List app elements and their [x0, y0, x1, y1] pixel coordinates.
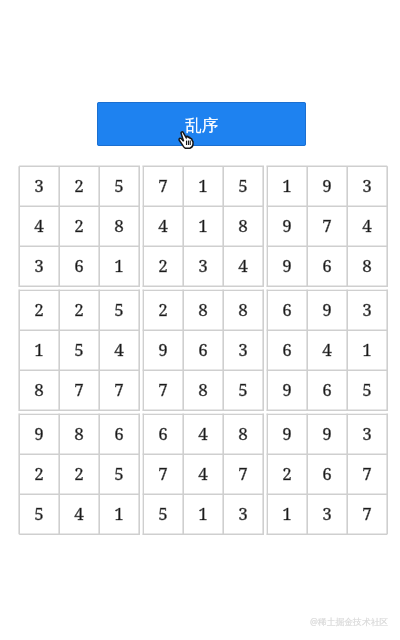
staticText: 1: [282, 502, 292, 525]
staticText: 7: [158, 462, 168, 485]
staticText: 8: [198, 298, 208, 321]
button[interactable]: 2: [143, 290, 263, 410]
staticText: 2: [74, 174, 84, 197]
staticText: 2: [34, 462, 44, 485]
staticText: 1: [114, 254, 124, 277]
staticText: 8: [362, 254, 372, 277]
staticText: 2: [282, 462, 292, 485]
staticText: 8: [198, 298, 208, 321]
staticText: 8: [34, 378, 44, 401]
staticText: 2: [34, 298, 44, 321]
staticText: 4: [198, 462, 208, 485]
staticText: 5: [238, 378, 248, 401]
staticText: 5: [114, 298, 124, 321]
staticText: 8: [238, 298, 248, 321]
staticText: 8: [114, 214, 124, 237]
staticText: 4: [114, 338, 124, 361]
staticText: 6: [322, 378, 332, 401]
staticText: 4: [34, 214, 44, 237]
staticText: 5: [114, 174, 124, 197]
staticText: 4: [362, 214, 372, 237]
staticText: 4: [158, 214, 168, 237]
staticText: 3: [238, 338, 248, 361]
staticText: 8: [362, 254, 372, 277]
staticText: 5: [34, 502, 44, 525]
staticText: 8: [198, 378, 208, 401]
staticText: @稀土掘金技术社区: [310, 616, 389, 628]
staticText: 7: [322, 214, 332, 237]
staticText: 1: [114, 254, 124, 277]
staticText: 5: [114, 462, 124, 485]
staticText: 9: [322, 298, 332, 321]
staticText: 5: [114, 174, 124, 197]
button[interactable]: 6: [267, 290, 387, 410]
staticText: 6: [74, 254, 84, 277]
staticText: 4: [114, 338, 124, 361]
staticText: 3: [198, 254, 208, 277]
staticText: 8: [198, 378, 208, 401]
staticText: 7: [114, 378, 124, 401]
staticText: 8: [238, 214, 248, 237]
button[interactable]: 1: [267, 166, 387, 286]
staticText: 9: [322, 174, 332, 197]
staticText: 9: [282, 422, 292, 445]
staticText: 1: [34, 338, 44, 361]
staticText: 6: [322, 462, 332, 485]
staticText: 5: [362, 378, 372, 401]
staticText: 6: [198, 338, 208, 361]
staticText: 4: [198, 422, 208, 445]
staticText: 5: [34, 502, 44, 525]
other: Pointer: [176, 128, 198, 150]
staticText: 2: [74, 462, 84, 485]
staticText: 7: [158, 378, 168, 401]
staticText: 6: [282, 298, 292, 321]
staticText: 3: [322, 502, 332, 525]
staticText: 6: [282, 338, 292, 361]
staticText: 2: [282, 462, 292, 485]
staticText: 3: [362, 422, 372, 445]
staticText: 6: [114, 422, 124, 445]
staticText: 3: [362, 298, 372, 321]
button[interactable]: 3: [19, 166, 139, 286]
staticText: 7: [362, 462, 372, 485]
staticText: 3: [238, 502, 248, 525]
button[interactable]: 6: [143, 414, 263, 534]
staticText: 5: [158, 502, 168, 525]
staticText: 5: [158, 502, 168, 525]
staticText: 9: [322, 422, 332, 445]
button[interactable]: 2: [19, 290, 139, 410]
staticText: 5: [238, 174, 248, 197]
staticText: 3: [34, 254, 44, 277]
staticText: 1: [198, 214, 208, 237]
staticText: 8: [238, 298, 248, 321]
staticText: 9: [282, 254, 292, 277]
staticText: 1: [198, 502, 208, 525]
staticText: 2: [158, 298, 168, 321]
staticText: 1: [282, 174, 292, 197]
button[interactable]: 7: [143, 166, 263, 286]
staticText: 1: [362, 338, 372, 361]
staticText: 4: [34, 214, 44, 237]
staticText: 7: [238, 462, 248, 485]
staticText: 4: [322, 338, 332, 361]
staticText: 1: [198, 174, 208, 197]
button[interactable]: 9: [267, 414, 387, 534]
staticText: 7: [74, 378, 84, 401]
staticText: 7: [114, 378, 124, 401]
staticText: 9: [158, 338, 168, 361]
staticText: 3: [34, 254, 44, 277]
staticText: 7: [158, 174, 168, 197]
staticText: 5: [74, 338, 84, 361]
staticText: 2: [74, 462, 84, 485]
staticText: 2: [158, 254, 168, 277]
staticText: 7: [74, 378, 84, 401]
staticText: 8: [74, 422, 84, 445]
staticText: 4: [158, 214, 168, 237]
button[interactable]: 乱序: [97, 102, 306, 146]
staticText: 乱序: [185, 115, 218, 136]
button[interactable]: 9: [19, 414, 139, 534]
staticText: 2: [74, 214, 84, 237]
staticText: 3: [198, 254, 208, 277]
staticText: 3: [238, 338, 248, 361]
staticText: 1: [198, 502, 208, 525]
